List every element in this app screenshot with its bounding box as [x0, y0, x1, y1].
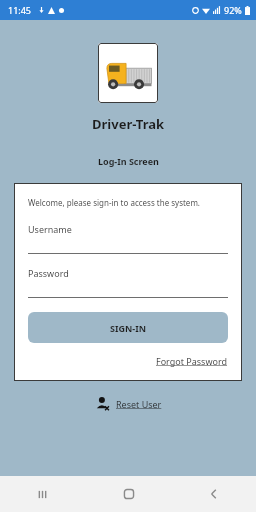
staticText: Username	[28, 223, 72, 235]
staticText: Driver-Trak	[92, 115, 165, 133]
button[interactable]: Back	[171, 476, 256, 512]
staticText: Log-In Screen	[98, 155, 159, 167]
staticText: SIGN-IN	[110, 322, 146, 334]
button[interactable]: Forgot Password	[156, 355, 228, 367]
other: Reset User	[95, 396, 110, 411]
staticText: 11:45	[8, 4, 32, 16]
button[interactable]: Reset User	[95, 396, 162, 411]
staticText: Welcome, please sign-in to access the sy…	[28, 197, 201, 208]
staticText: 92%	[224, 4, 242, 16]
button[interactable]: SIGN-IN	[28, 312, 228, 343]
button[interactable]: Recent apps	[0, 476, 86, 512]
button[interactable]: Home	[86, 476, 171, 512]
staticText: Password	[28, 267, 69, 279]
staticText: Reset User	[116, 398, 162, 410]
